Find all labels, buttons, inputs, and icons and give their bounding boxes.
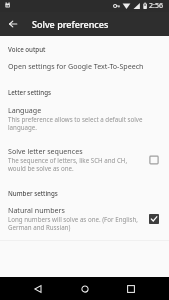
button[interactable]: Home [75, 279, 95, 299]
staticText: 2:56 [149, 1, 163, 11]
button[interactable]: Recent apps [121, 279, 141, 299]
button[interactable]: Solve letter sequences [0, 146, 169, 172]
staticText: Natural numbers [8, 205, 65, 215]
staticText: Voice output [8, 45, 46, 53]
staticText: Language [8, 105, 42, 115]
staticText: Number settings [8, 189, 58, 197]
button[interactable]: Back [28, 279, 48, 299]
button[interactable]: Open settings for Google Text-To-Speech [0, 61, 169, 71]
button[interactable]: Disabled checkbox [146, 152, 162, 168]
button[interactable]: Enabled checkbox [146, 211, 162, 227]
staticText: Letter settings [8, 88, 52, 96]
staticText: Open settings for Google Text-To-Speech [8, 61, 144, 71]
staticText: Solve letter sequences [8, 146, 83, 156]
button[interactable]: Language [0, 105, 169, 131]
staticText: Solve preferences [32, 18, 109, 30]
staticText: This preference allows to select a defau… [8, 115, 161, 131]
staticText: The sequence of letters, like SCH and CH… [8, 156, 139, 172]
button[interactable]: Navigate up [0, 12, 24, 36]
staticText: Long numbers will solve as one. (For Eng… [8, 215, 139, 231]
button[interactable]: Natural numbers [0, 205, 169, 231]
